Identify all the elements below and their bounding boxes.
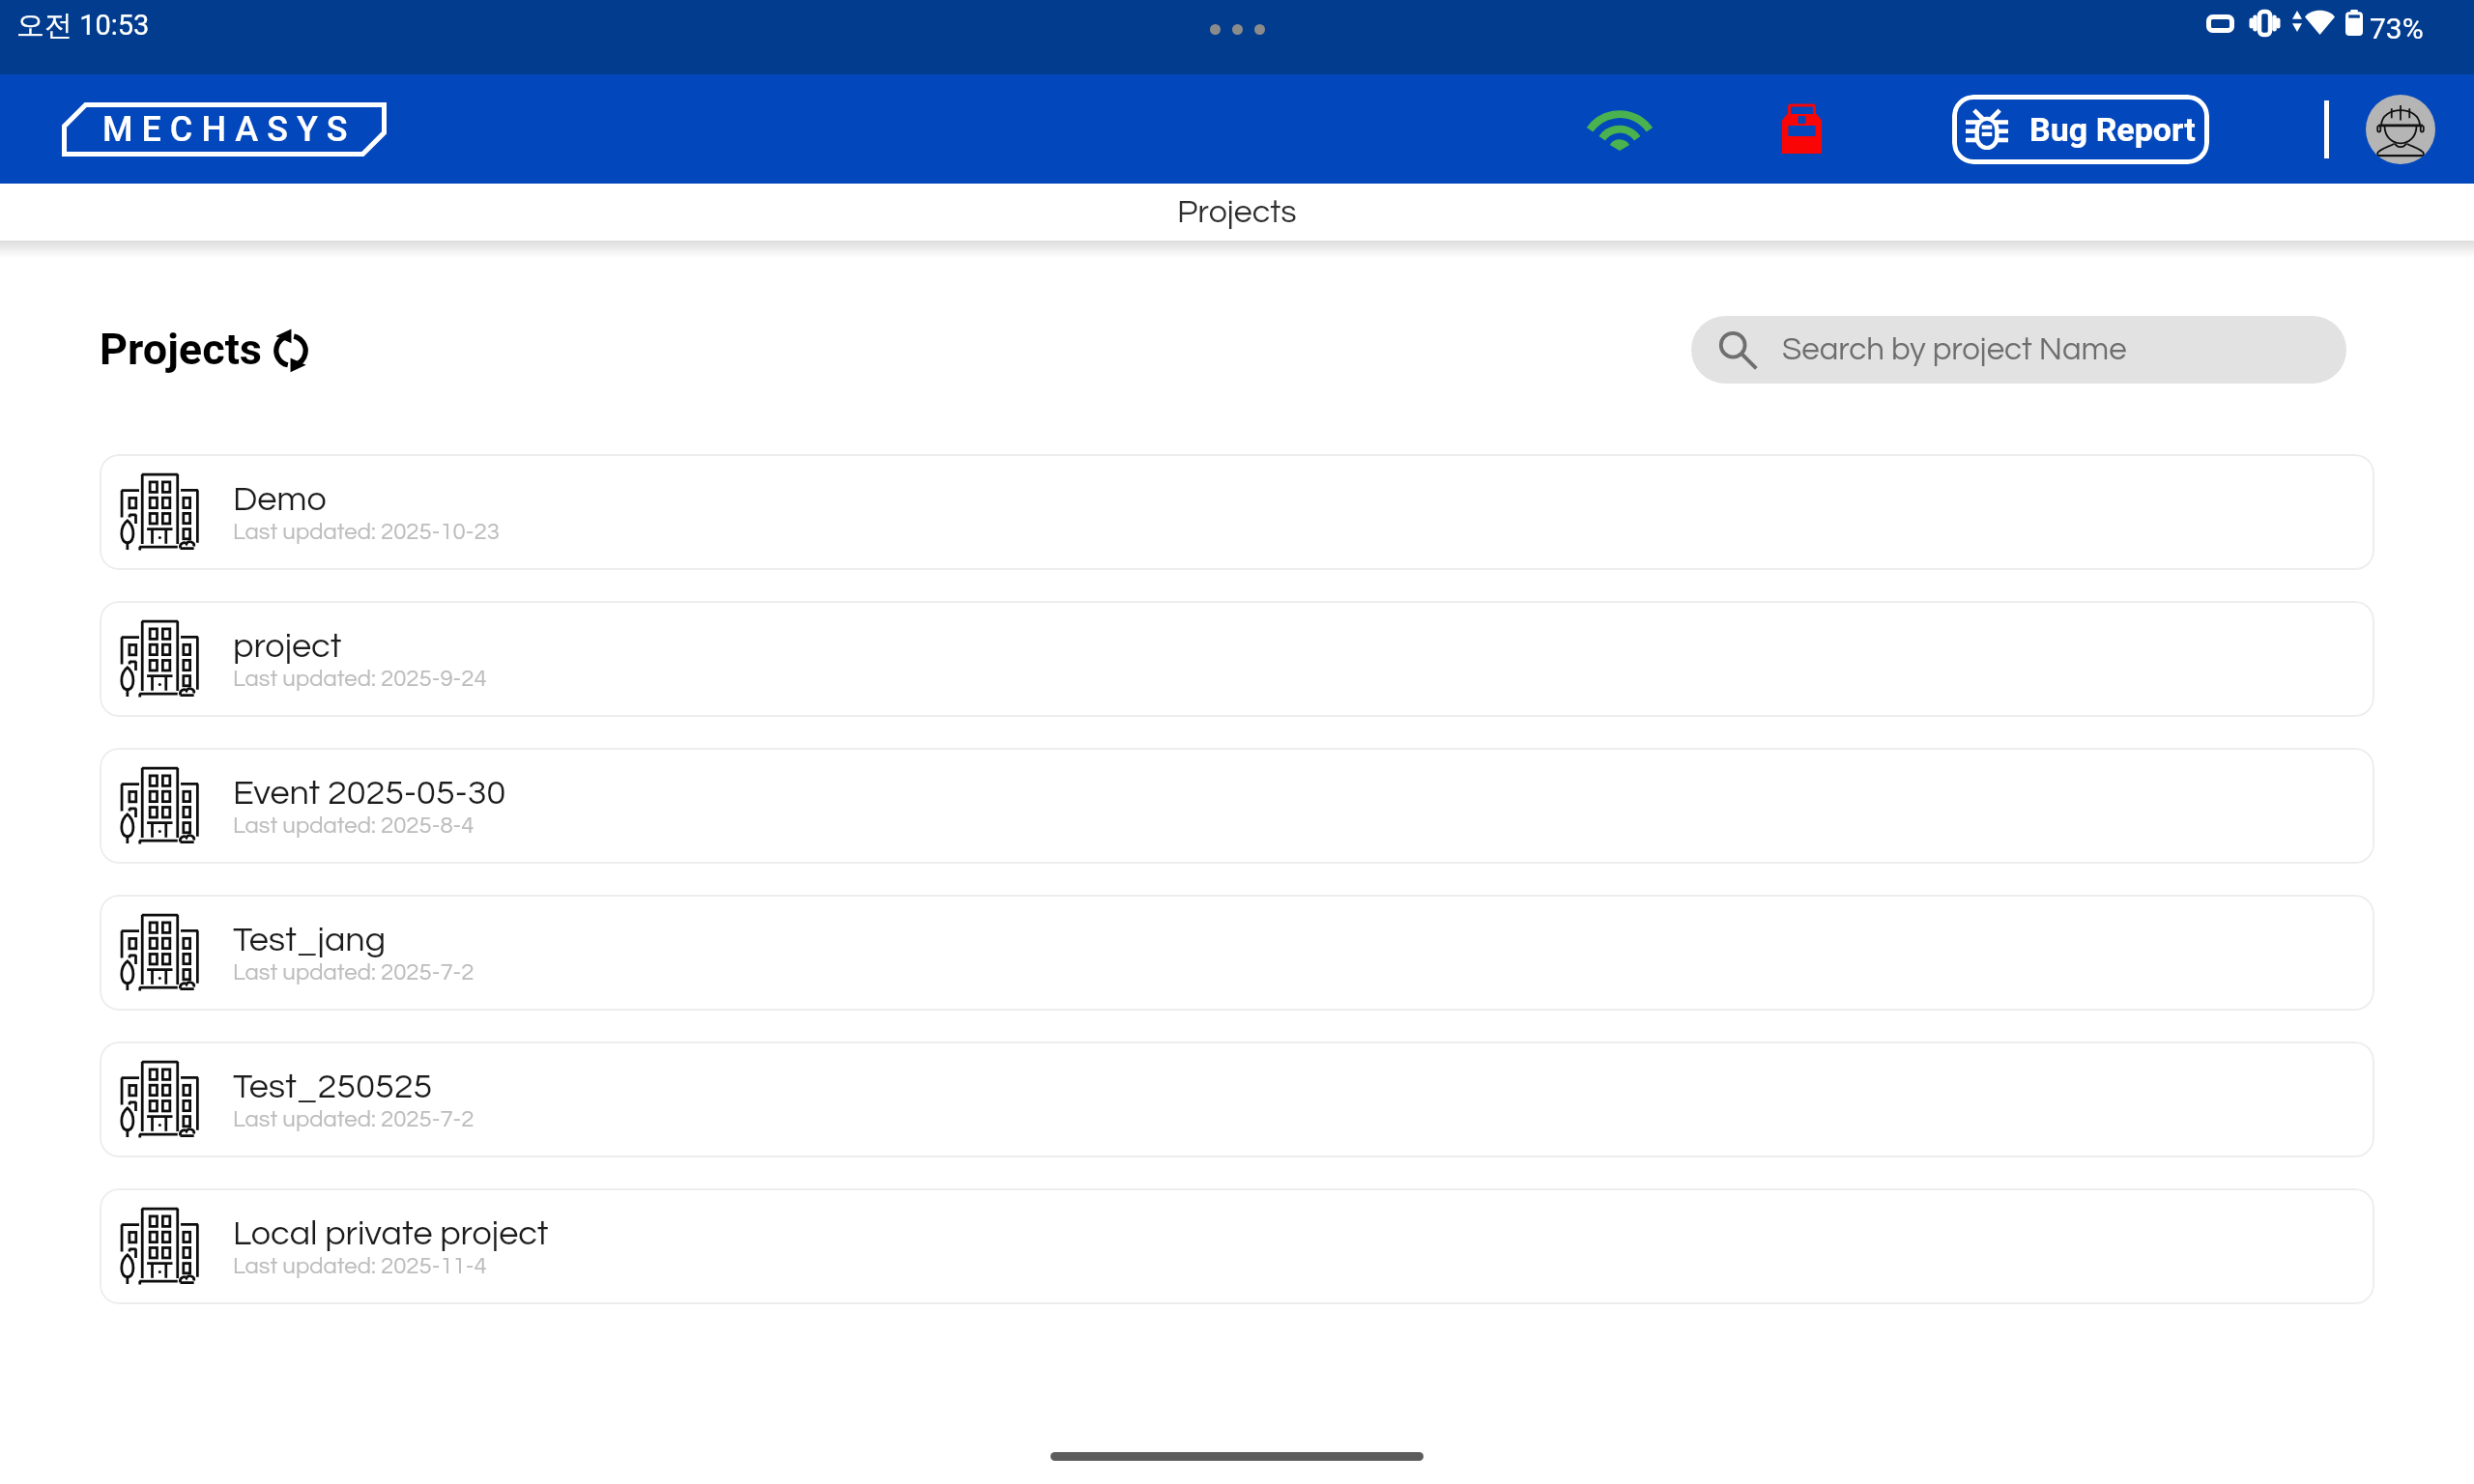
staticText: 오전 10:53 [16,8,150,43]
staticText: Search by project Name [1782,333,2127,366]
staticText: Demo [233,481,327,517]
button[interactable]: Network status [1585,95,1654,164]
staticText: Last updated: 2025-11-4 [233,1254,487,1278]
staticText: Local private project [233,1215,549,1251]
button[interactable]: Event 2025-05-30 [100,748,2374,864]
staticText: Test_jang [233,922,387,957]
button[interactable]: Refresh projects [269,328,313,372]
button[interactable]: MECHASYS home [62,102,387,157]
staticText: Last updated: 2025-8-4 [233,813,475,838]
button[interactable]: Bug Report [1952,95,2209,164]
button[interactable]: Test_250525 [100,1042,2374,1157]
staticText: Projects [1177,195,1297,229]
button[interactable]: Projects [0,184,2474,241]
staticText: Last updated: 2025-7-2 [233,1107,475,1131]
button[interactable]: Search by project Name [1691,316,2346,384]
staticText: project [233,628,342,664]
button[interactable]: Test_jang [100,895,2374,1011]
staticText: Last updated: 2025-9-24 [233,667,487,691]
staticText: Event 2025-05-30 [233,775,506,811]
button[interactable]: project [100,601,2374,717]
staticText: Last updated: 2025-7-2 [233,960,475,985]
staticText: Projects [100,324,263,375]
button[interactable]: Account [2366,95,2435,164]
button[interactable]: Toolbox [1767,95,1836,164]
staticText: Test_250525 [233,1069,433,1104]
button[interactable]: Local private project [100,1188,2374,1304]
button[interactable]: Demo [100,454,2374,570]
staticText: MECHASYS [102,109,357,150]
staticText: Last updated: 2025-10-23 [233,520,500,544]
staticText: 73% [2370,12,2424,45]
staticText: Bug Report [2029,110,2196,149]
